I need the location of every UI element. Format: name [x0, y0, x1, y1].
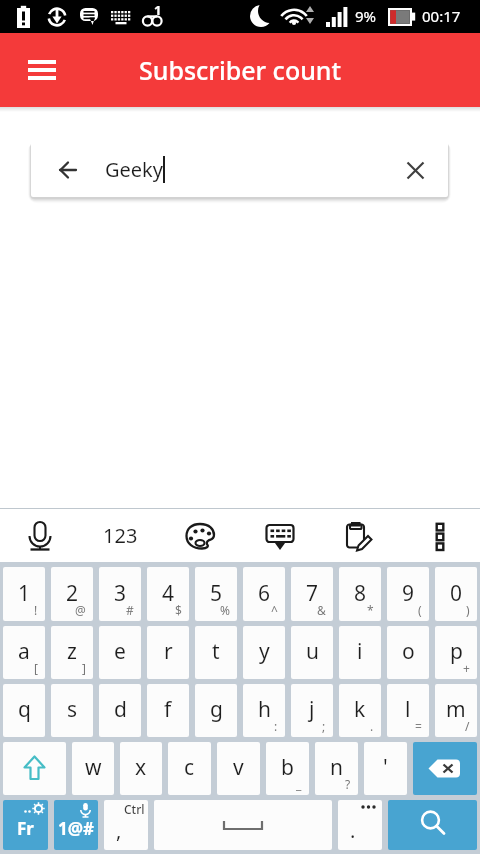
staticText: 4 [162, 579, 175, 608]
button[interactable]: , [104, 800, 148, 850]
button[interactable]: r [147, 626, 189, 679]
staticText: b [281, 753, 294, 782]
button[interactable]: c [168, 742, 211, 795]
staticText: h [258, 695, 271, 724]
button[interactable]: x [120, 742, 162, 795]
staticText: ( [418, 602, 422, 618]
staticText: ^ [271, 602, 278, 618]
staticText: , [116, 817, 122, 844]
button[interactable]: Language [3, 800, 48, 850]
button[interactable]: Shift [3, 742, 66, 795]
staticText: 9 [402, 579, 415, 608]
staticText: + [463, 660, 470, 676]
staticText: . [370, 718, 374, 734]
button[interactable]: i [339, 626, 381, 679]
button[interactable]: w [72, 742, 114, 795]
button[interactable]: g [195, 684, 237, 737]
button[interactable]: Theme [160, 509, 240, 562]
button[interactable]: s [51, 684, 93, 737]
staticText: d [114, 695, 127, 724]
staticText: Ctrl [124, 801, 145, 817]
staticText: 1 [154, 1, 162, 19]
staticText: 3 [114, 579, 127, 608]
staticText: Subscriber count [139, 53, 342, 87]
button[interactable]: 2 [51, 567, 93, 621]
button[interactable]: Voice input [0, 509, 80, 562]
button[interactable]: m [435, 684, 477, 737]
staticText: a [18, 637, 30, 666]
staticText: w [85, 753, 102, 782]
staticText: o [402, 637, 415, 666]
button[interactable]: Symbols [54, 800, 98, 850]
button[interactable]: j [291, 684, 333, 737]
staticText: ] [82, 660, 86, 676]
button[interactable]: ' [364, 742, 407, 795]
staticText: v [233, 753, 244, 782]
button[interactable]: d [99, 684, 141, 737]
staticText: g [210, 695, 223, 724]
staticText: ; [322, 718, 326, 734]
button[interactable]: b [266, 742, 309, 795]
button[interactable]: a [3, 626, 45, 679]
button[interactable]: 0 [435, 567, 477, 621]
button[interactable]: Space [154, 800, 332, 850]
staticText: 5 [210, 579, 223, 608]
button[interactable]: o [387, 626, 429, 679]
button[interactable]: 1 [3, 567, 45, 621]
staticText: * [367, 602, 374, 618]
staticText: Fr [17, 817, 34, 840]
staticText: / [465, 718, 470, 734]
button[interactable]: y [243, 626, 285, 679]
button[interactable]: u [291, 626, 333, 679]
button[interactable]: Search [388, 800, 477, 850]
button[interactable]: Clear search [391, 146, 439, 194]
button[interactable]: l [387, 684, 429, 737]
button[interactable]: f [147, 684, 189, 737]
button[interactable]: t [195, 626, 237, 679]
staticText: [ [34, 660, 38, 676]
button[interactable]: Clipboard [320, 509, 400, 562]
staticText: 2 [66, 579, 79, 608]
button[interactable]: v [217, 742, 260, 795]
button[interactable]: 7 [291, 567, 333, 621]
staticText: f [164, 695, 172, 724]
button[interactable]: h [243, 684, 285, 737]
staticText: k [354, 695, 366, 724]
button[interactable]: Backspace [413, 742, 477, 795]
staticText: 7 [306, 579, 319, 608]
button[interactable]: Numbers [80, 509, 160, 562]
button[interactable]: . [338, 800, 382, 850]
staticText: % [220, 602, 230, 618]
staticText: q [18, 695, 31, 724]
staticText: m [446, 695, 466, 724]
staticText: 9% [355, 6, 377, 26]
button[interactable]: Back [44, 146, 92, 194]
button[interactable]: k [339, 684, 381, 737]
staticText: 1 [18, 579, 31, 608]
staticText: e [114, 637, 126, 666]
staticText: & [317, 602, 326, 618]
button[interactable]: Open navigation menu [14, 42, 70, 98]
staticText: 8 [354, 579, 367, 608]
button[interactable]: q [3, 684, 45, 737]
staticText: ) [466, 602, 470, 618]
button[interactable]: Hide keyboard [240, 509, 320, 562]
button[interactable]: 8 [339, 567, 381, 621]
button[interactable]: e [99, 626, 141, 679]
staticText: = [415, 718, 422, 734]
button[interactable]: n [315, 742, 358, 795]
button[interactable]: 9 [387, 567, 429, 621]
button[interactable]: 6 [243, 567, 285, 621]
button[interactable]: 4 [147, 567, 189, 621]
button[interactable]: z [51, 626, 93, 679]
staticText: r [164, 637, 173, 666]
button[interactable]: 5 [195, 567, 237, 621]
staticText: 0 [450, 579, 463, 608]
staticText: ' [383, 753, 388, 782]
button[interactable]: p [435, 626, 477, 679]
staticText: l [405, 695, 411, 724]
button[interactable]: 3 [99, 567, 141, 621]
button[interactable]: More options [400, 509, 480, 562]
staticText: ? [345, 776, 351, 792]
button[interactable]: Back [31, 142, 448, 197]
